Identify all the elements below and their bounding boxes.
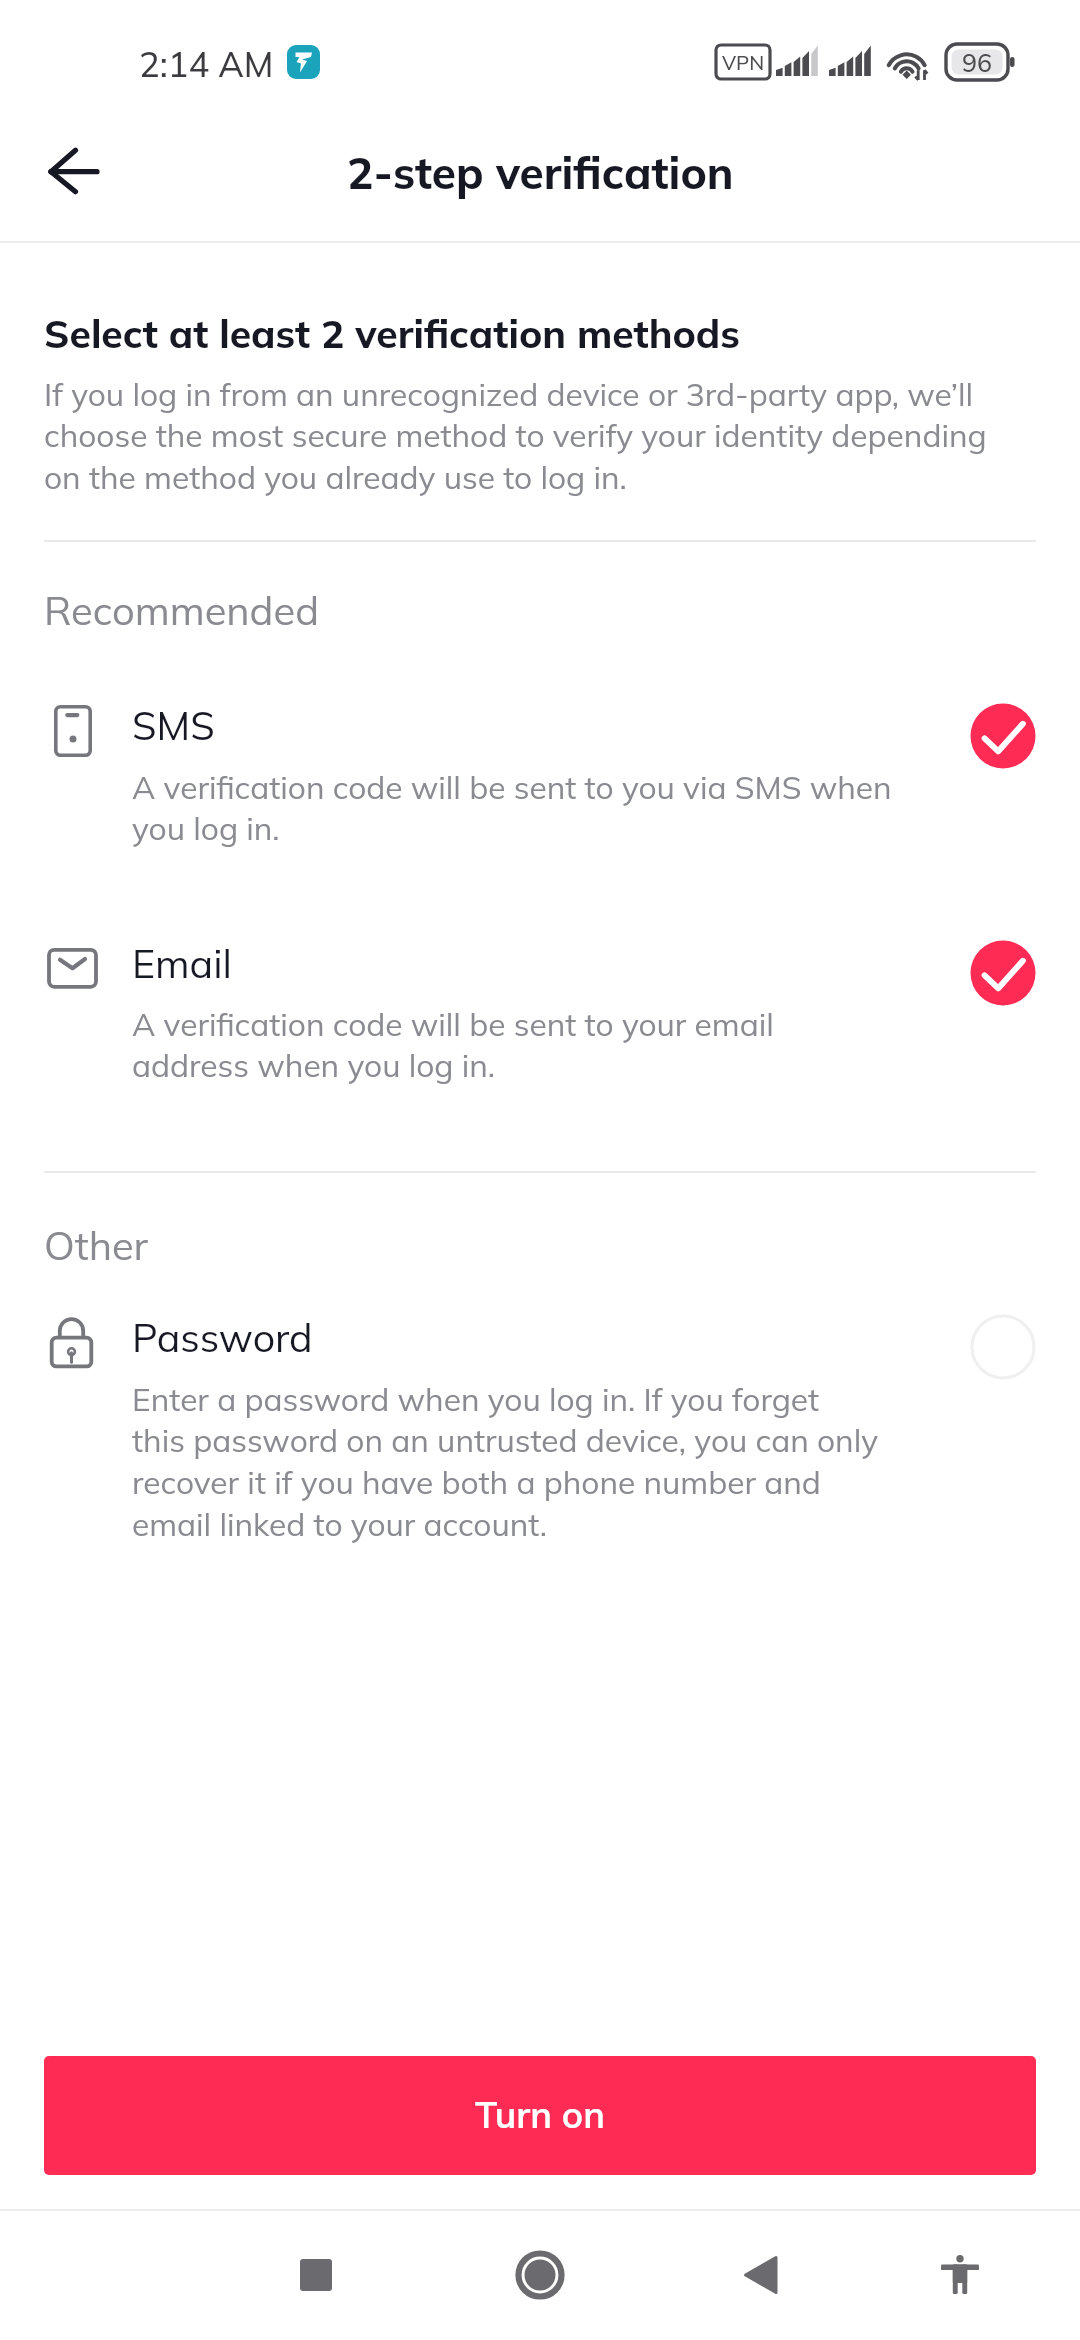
button[interactable]: Accessibility: [900, 2215, 1020, 2335]
staticText: 2-step verification: [347, 145, 734, 200]
staticText: Enter a password when you log in. If you…: [132, 1379, 879, 1544]
button[interactable]: Recent apps: [256, 2215, 376, 2335]
button[interactable]: Turn on: [44, 2056, 1036, 2175]
button[interactable]: Back: [700, 2215, 820, 2335]
staticText: Select at least 2 verification methods: [44, 309, 740, 358]
button[interactable]: Back: [18, 120, 122, 224]
button[interactable]: [0, 918, 1080, 1078]
staticText: Turn on: [475, 2091, 606, 2137]
staticText: If you log in from an unrecognized devic…: [44, 374, 987, 497]
staticText: 2:14 AM: [139, 42, 274, 85]
staticText: Other: [44, 1220, 149, 1270]
button[interactable]: [0, 677, 1080, 837]
button[interactable]: Home: [480, 2215, 600, 2335]
staticText: SMS: [132, 701, 215, 750]
staticText: VPN: [722, 50, 765, 75]
button[interactable]: Email selected: [970, 940, 1036, 1006]
staticText: 96: [962, 47, 993, 78]
button[interactable]: Select Password: [970, 1314, 1036, 1380]
staticText: Recommended: [44, 585, 320, 635]
staticText: A verification code will be sent to you …: [132, 767, 892, 848]
button[interactable]: [0, 1297, 1080, 1557]
staticText: Email: [132, 939, 232, 988]
staticText: Password: [132, 1313, 313, 1362]
staticText: A verification code will be sent to your…: [132, 1004, 774, 1085]
button[interactable]: SMS selected: [970, 703, 1036, 769]
